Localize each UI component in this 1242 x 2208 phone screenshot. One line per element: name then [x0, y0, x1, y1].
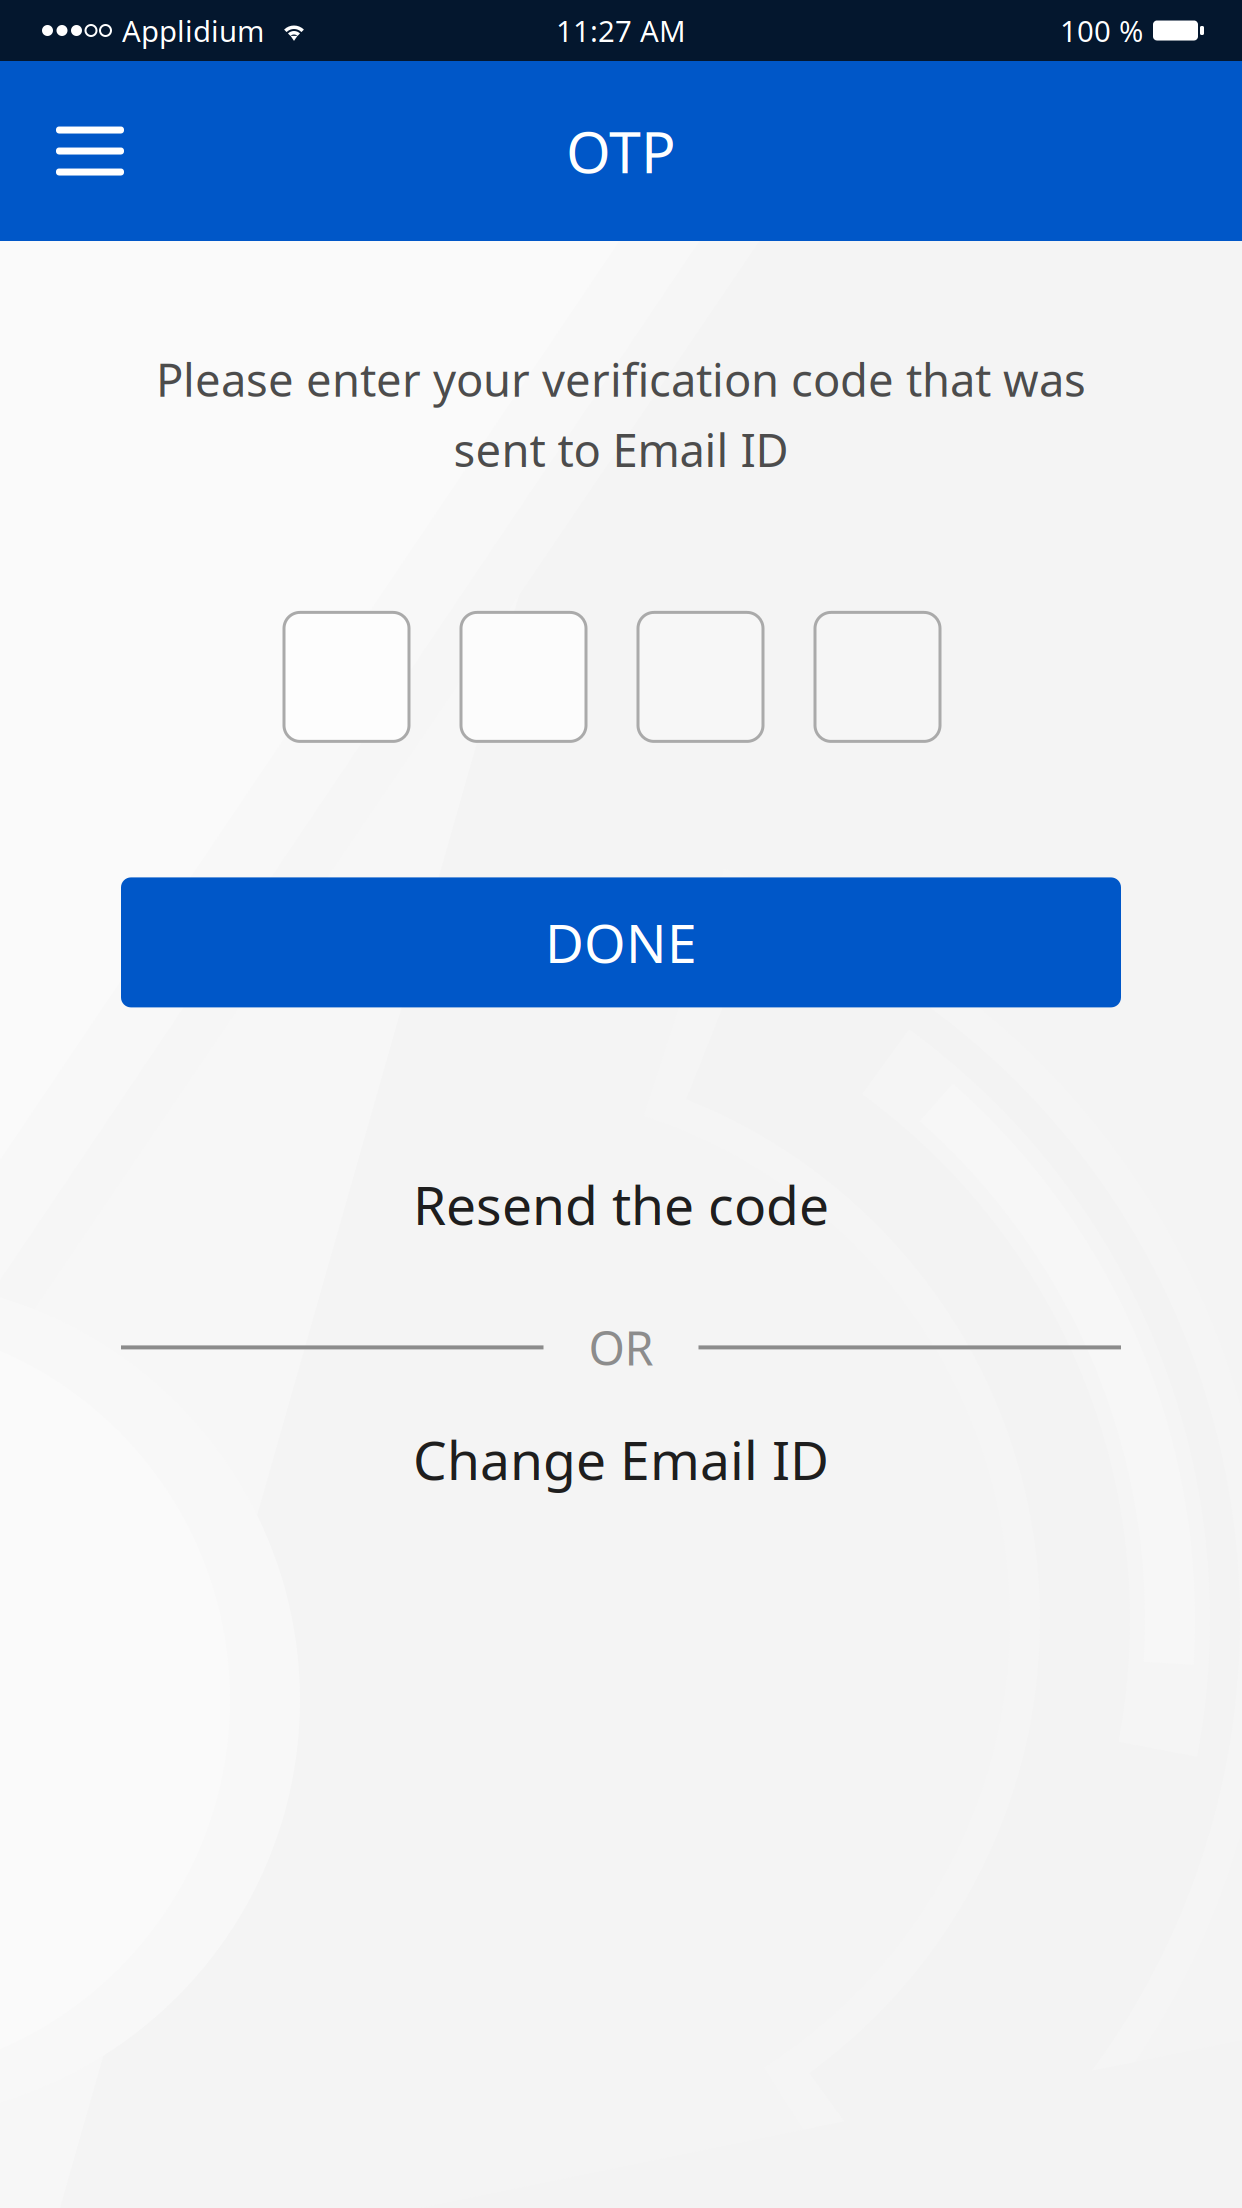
staticText: Change Email ID	[413, 1424, 829, 1495]
button[interactable]: Menu	[34, 92, 146, 210]
button[interactable]: Resend the code	[0, 1162, 1242, 1246]
staticText: Applidium	[122, 11, 264, 50]
button[interactable]: DONE	[121, 877, 1121, 1007]
staticText: OR	[588, 1316, 653, 1378]
staticText: Please enter your verification code that…	[156, 349, 1086, 409]
staticText: 100 %	[1060, 11, 1143, 50]
button[interactable]: Change Email ID	[0, 1417, 1242, 1501]
staticText: OTP	[566, 113, 676, 189]
staticText: sent to Email ID	[453, 419, 788, 479]
staticText: Resend the code	[413, 1169, 829, 1240]
staticText: DONE	[545, 907, 697, 978]
staticText: 11:27 AM	[556, 11, 686, 50]
